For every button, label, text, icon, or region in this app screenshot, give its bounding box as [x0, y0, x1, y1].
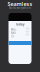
staticText: Notify [10, 28, 17, 35]
staticText: Seamless [7, 0, 32, 8]
staticText: Sync [10, 27, 15, 30]
staticText: Backup [10, 31, 16, 38]
button[interactable]: Notify [8, 30, 31, 33]
staticText: Works everywhere [8, 6, 31, 10]
staticText: Today [16, 23, 24, 26]
button[interactable]: Backup [8, 33, 31, 36]
button[interactable]: Sync [8, 27, 31, 30]
